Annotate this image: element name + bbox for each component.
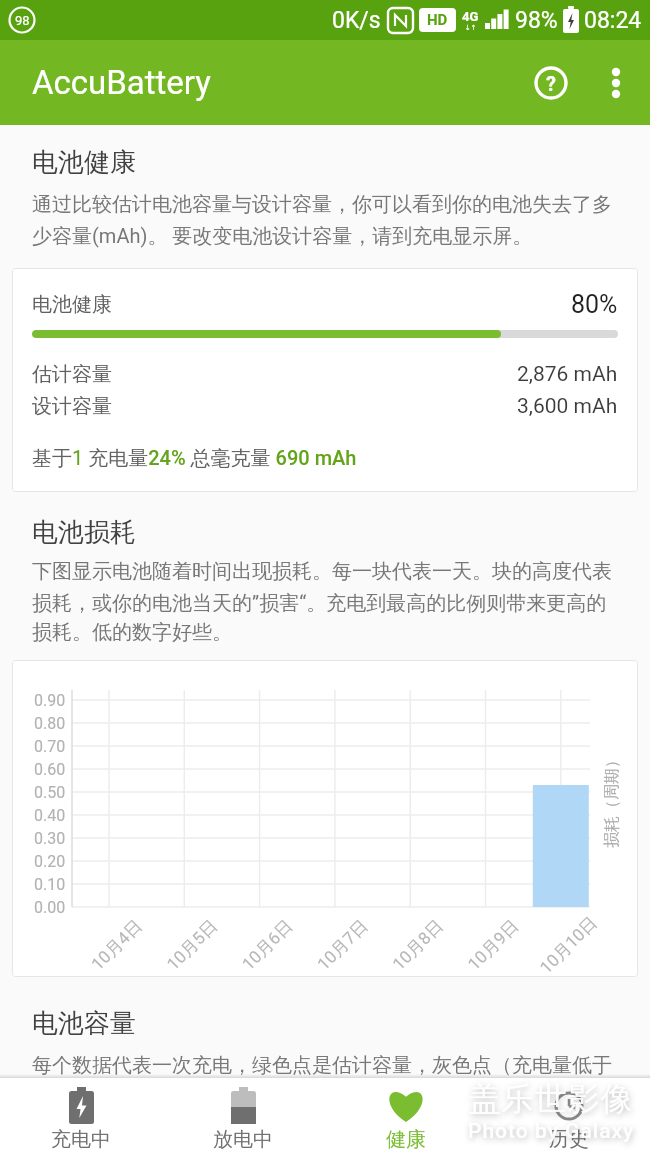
- button[interactable]: 充电中: [0, 1078, 162, 1156]
- staticText: 08:24: [584, 7, 642, 34]
- staticText: 充电中: [51, 1127, 111, 1152]
- staticText: ↓↑: [465, 24, 477, 32]
- staticText: 每个数据代表一次充电，绿色点是估计容量，灰色点（充电量低于百分之: [32, 1053, 618, 1108]
- staticText: 电池健康: [32, 146, 136, 179]
- button[interactable]: 历史: [487, 1078, 650, 1156]
- staticText: ?: [546, 72, 556, 95]
- button[interactable]: 放电中: [162, 1078, 324, 1156]
- staticText: AccuBattery: [32, 63, 211, 102]
- staticText: 电池健康: [32, 292, 112, 317]
- staticText: 健康: [386, 1127, 426, 1152]
- button[interactable]: 健康: [324, 1078, 487, 1156]
- staticText: 98: [15, 13, 30, 28]
- staticText: 估计容量: [32, 362, 112, 387]
- staticText: 3,600 mAh: [517, 394, 618, 419]
- staticText: Photo by Galaxy: [468, 1119, 635, 1144]
- staticText: 80%: [571, 290, 618, 319]
- staticText: 电池容量: [32, 1007, 136, 1040]
- staticText: 通过比较估计电池容量与设计容量，你可以看到你的电池失去了多少容量(mAh)。 要…: [32, 192, 618, 249]
- staticText: 下图显示电池随着时间出现损耗。每一块代表一天。块的高度代表损耗，或你的电池当天的…: [32, 559, 618, 645]
- staticText: 98%: [515, 7, 558, 34]
- staticText: HD: [427, 11, 448, 29]
- button[interactable]: [592, 59, 640, 107]
- button[interactable]: ?: [523, 55, 579, 111]
- staticText: 放电中: [213, 1127, 273, 1152]
- staticText: 2,876 mAh: [517, 362, 618, 387]
- staticText: 历史: [549, 1127, 589, 1152]
- staticText: 电池损耗: [32, 516, 136, 549]
- staticText: 0K/s: [332, 7, 381, 34]
- staticText: 盖乐世影像: [468, 1079, 633, 1119]
- staticText: 基于1 充电量24% 总毫克量 690 mAh: [32, 446, 357, 471]
- staticText: 设计容量: [32, 394, 112, 419]
- staticText: 4G: [462, 9, 479, 24]
